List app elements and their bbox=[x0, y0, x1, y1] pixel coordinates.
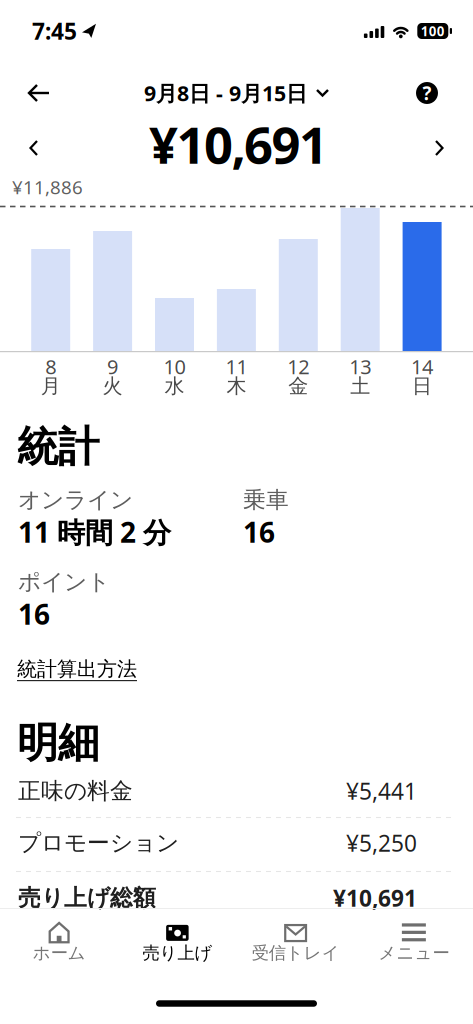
staticText: ホーム bbox=[33, 942, 86, 964]
staticText: メニュー bbox=[378, 942, 449, 964]
staticText: 月 bbox=[41, 374, 61, 398]
button[interactable]: 売り上げ bbox=[118, 912, 236, 970]
staticText: 統計算出方法 bbox=[17, 657, 137, 681]
button[interactable]: 9月8日 bbox=[21, 198, 81, 394]
staticText: 統計 bbox=[17, 422, 99, 472]
staticText: 火 bbox=[103, 374, 123, 398]
staticText: 16 bbox=[243, 513, 275, 551]
button[interactable]: 9月13日 bbox=[330, 198, 390, 394]
staticText: プロモーション bbox=[18, 829, 179, 857]
staticText: 9月8日 - 9月15日 bbox=[144, 79, 307, 107]
staticText: ポイント bbox=[18, 568, 110, 596]
button[interactable]: 9月9日 bbox=[83, 198, 143, 394]
staticText: 正味の料金 bbox=[18, 777, 133, 805]
button[interactable]: 受信トレイ bbox=[236, 912, 355, 970]
staticText: 11 時間 2 分 bbox=[18, 513, 171, 551]
staticText: ¥11,886 bbox=[12, 175, 83, 199]
staticText: 明細 bbox=[17, 718, 99, 768]
button[interactable]: 9月10日 bbox=[144, 198, 204, 394]
button[interactable]: メニュー bbox=[355, 912, 473, 970]
staticText: 11 bbox=[225, 353, 247, 380]
staticText: 金 bbox=[288, 374, 308, 398]
staticText: 14 bbox=[411, 353, 433, 380]
staticText: ¥10,691 bbox=[149, 110, 328, 178]
staticText: 10 bbox=[163, 353, 185, 380]
staticText: オンライン bbox=[18, 486, 133, 514]
staticText: 乗車 bbox=[243, 486, 289, 514]
staticText: ¥10,691 bbox=[333, 883, 417, 913]
staticText: ¥5,250 bbox=[346, 828, 417, 858]
staticText: ? bbox=[422, 81, 431, 105]
staticText: ¥5,441 bbox=[346, 776, 417, 806]
staticText: 日 bbox=[412, 374, 432, 398]
staticText: 9 bbox=[107, 353, 118, 380]
staticText: 12 bbox=[287, 353, 309, 380]
staticText: 売り上げ bbox=[142, 942, 212, 964]
button[interactable]: 9月12日 bbox=[268, 198, 328, 394]
staticText: 売り上げ総額 bbox=[18, 884, 156, 912]
button[interactable]: 9月14日 bbox=[392, 198, 452, 394]
button[interactable]: 次の週 bbox=[431, 136, 448, 160]
button[interactable]: 前の週 bbox=[25, 136, 42, 160]
button[interactable]: 9月8日 - 9月15日 bbox=[144, 79, 329, 107]
staticText: 16 bbox=[18, 595, 50, 633]
staticText: 受信トレイ bbox=[252, 942, 340, 964]
button[interactable]: 戻る bbox=[24, 80, 54, 106]
button[interactable]: ヘルプ bbox=[416, 81, 438, 105]
staticText: 木 bbox=[226, 374, 246, 398]
staticText: 7:45 bbox=[32, 16, 77, 46]
staticText: 8 bbox=[45, 353, 56, 380]
button[interactable]: ホーム bbox=[0, 912, 118, 970]
staticText: 土 bbox=[350, 374, 370, 398]
staticText: 100 bbox=[421, 22, 445, 40]
button[interactable]: 統計算出方法 bbox=[17, 657, 137, 681]
staticText: 水 bbox=[164, 374, 184, 398]
staticText: 13 bbox=[349, 353, 371, 380]
button[interactable]: 9月11日 bbox=[206, 198, 266, 394]
